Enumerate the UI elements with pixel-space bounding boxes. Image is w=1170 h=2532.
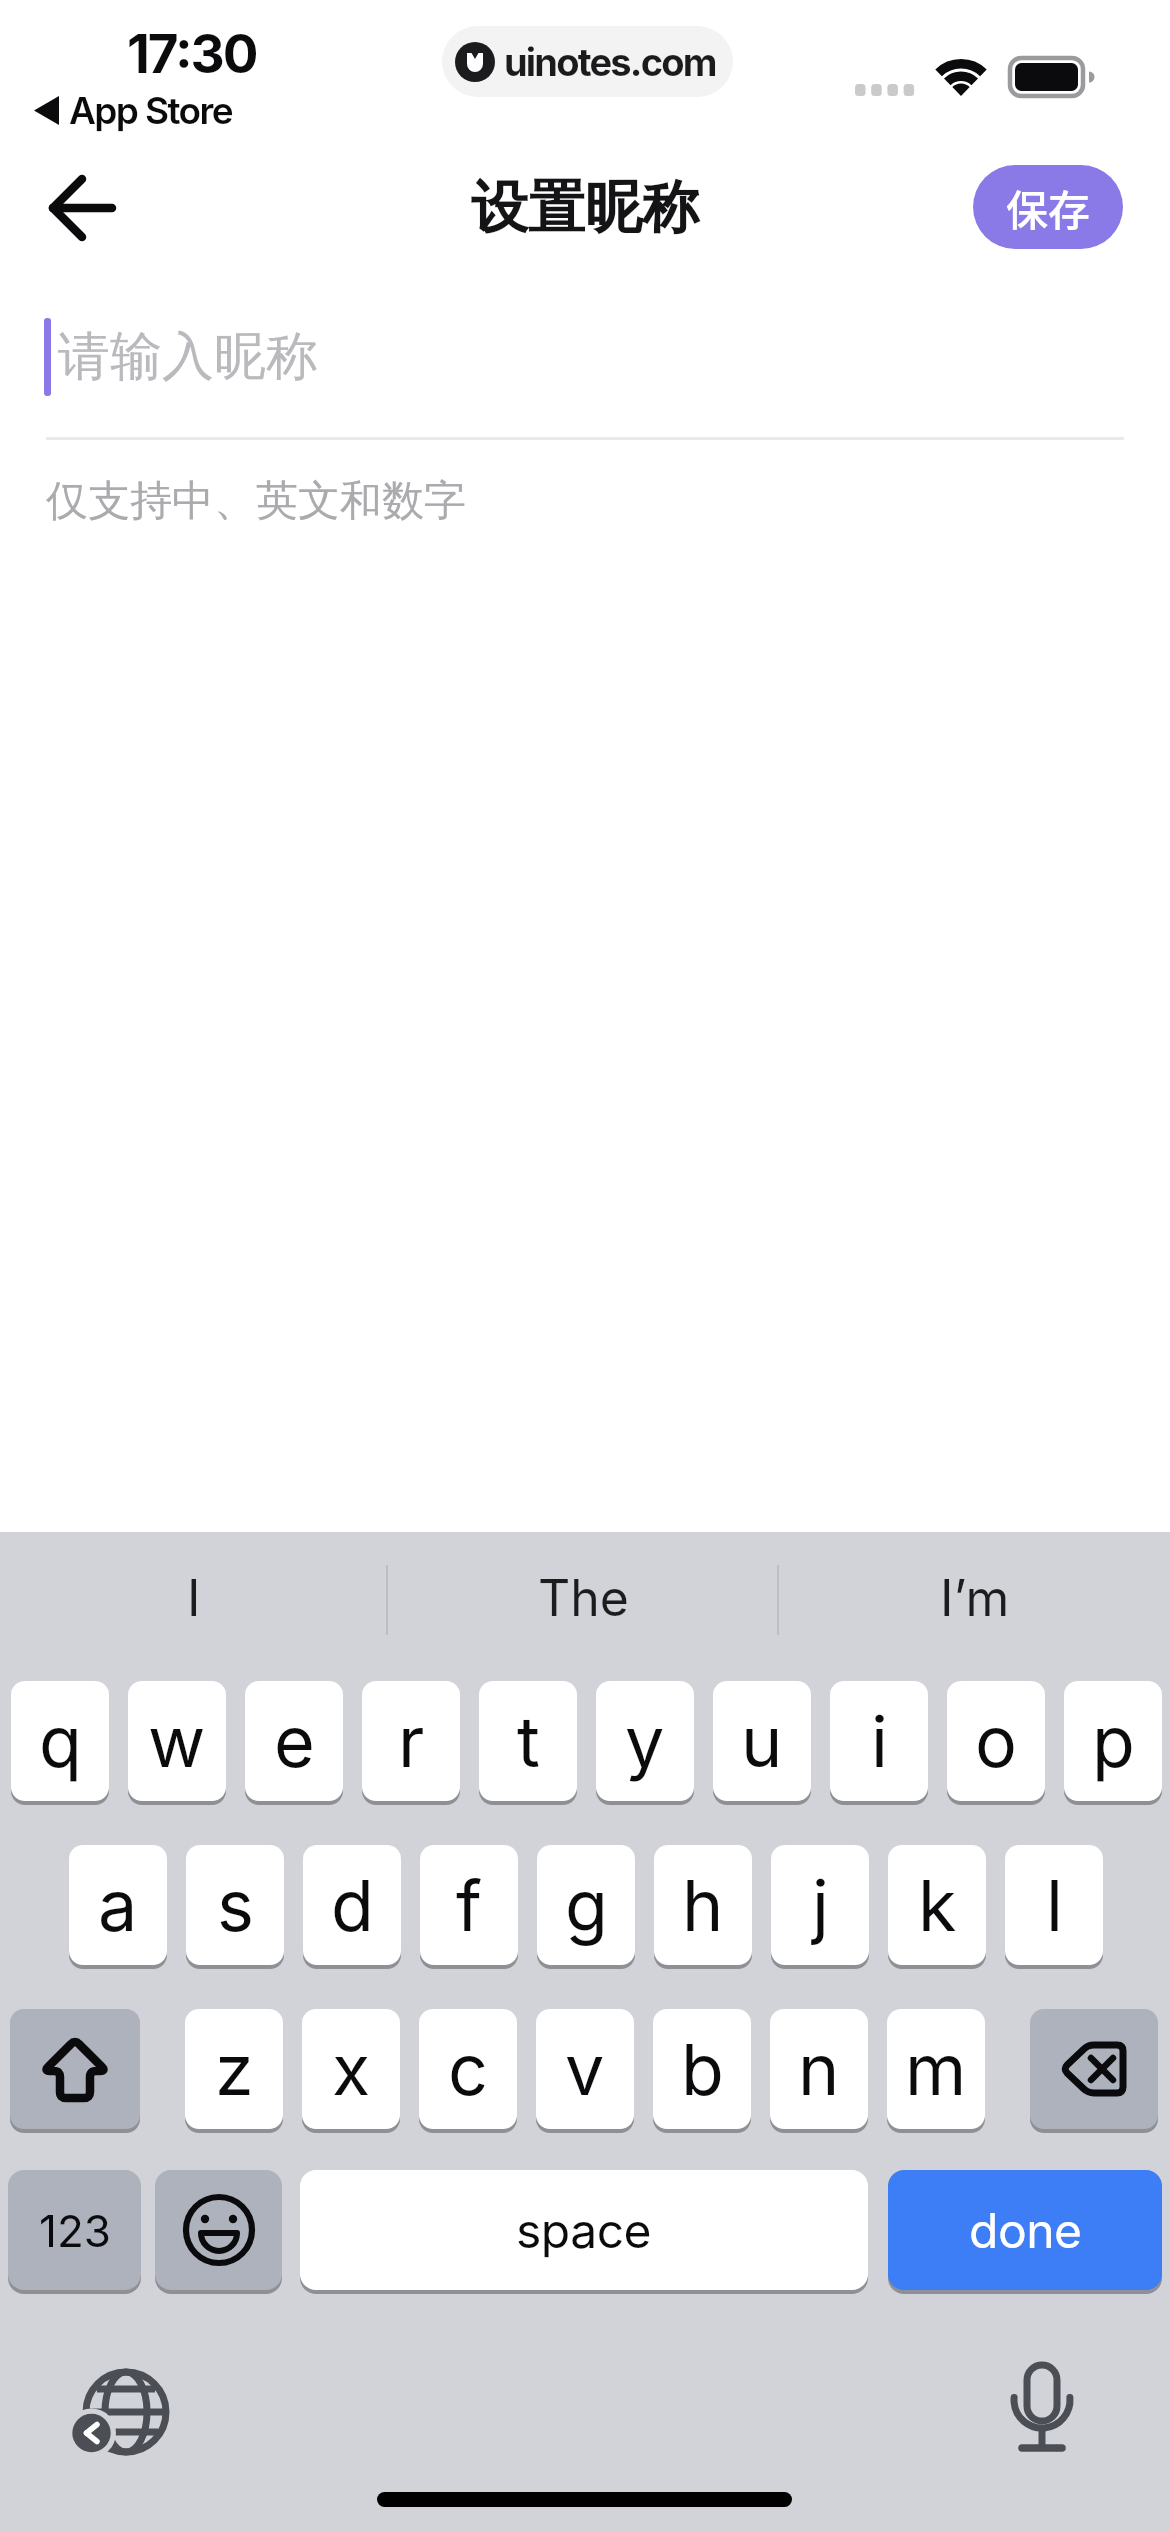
button[interactable]: v (536, 2009, 634, 2129)
button[interactable]: q (11, 1681, 109, 1801)
staticText: q (39, 1699, 82, 1784)
button[interactable]: h (654, 1845, 752, 1965)
button[interactable]: j (771, 1845, 869, 1965)
button[interactable]: I’m (779, 1560, 1170, 1636)
button[interactable]: d (303, 1845, 401, 1965)
staticText: space (516, 2201, 652, 2259)
staticText: The (538, 1568, 629, 1628)
staticText: o (975, 1699, 1017, 1784)
button[interactable]: m (887, 2009, 985, 2129)
button[interactable]: 123 (8, 2170, 141, 2290)
staticText: uinotes.com (504, 39, 716, 85)
button[interactable] (155, 2170, 282, 2290)
staticText: 17:30 (127, 22, 257, 86)
button[interactable]: t (479, 1681, 577, 1801)
button[interactable]: p (1064, 1681, 1162, 1801)
button[interactable]: e (245, 1681, 343, 1801)
staticText: 请输入昵称 (58, 324, 318, 390)
staticText: I’m (940, 1568, 1010, 1628)
staticText: p (1092, 1699, 1135, 1784)
button[interactable]: The (389, 1560, 777, 1636)
staticText: 设置昵称 (471, 172, 699, 244)
button[interactable] (64, 2350, 188, 2474)
button[interactable]: o (947, 1681, 1045, 1801)
button[interactable] (10, 2009, 140, 2129)
button[interactable]: x (302, 2009, 400, 2129)
button[interactable]: f (420, 1845, 518, 1965)
staticText: j (812, 1863, 829, 1948)
staticText: a (98, 1863, 138, 1948)
button[interactable]: App Store (34, 86, 233, 134)
staticText: b (681, 2027, 724, 2112)
staticText: i (871, 1699, 888, 1784)
button[interactable]: z (185, 2009, 283, 2129)
staticText: f (456, 1863, 482, 1948)
staticText: s (217, 1863, 254, 1948)
button[interactable]: g (537, 1845, 635, 1965)
staticText: I (187, 1568, 201, 1628)
staticText: c (448, 2027, 488, 2112)
staticText: g (565, 1863, 608, 1948)
button[interactable]: w (128, 1681, 226, 1801)
button[interactable]: 保存 (973, 165, 1123, 249)
staticText: h (682, 1863, 724, 1948)
staticText: y (625, 1699, 665, 1784)
button[interactable]: y (596, 1681, 694, 1801)
staticText: 仅支持中、英文和数字 (46, 475, 466, 528)
button[interactable]: space (300, 2170, 868, 2290)
staticText: k (918, 1863, 957, 1948)
staticText: w (148, 1699, 206, 1784)
staticText: l (1046, 1863, 1063, 1948)
staticText: d (331, 1863, 374, 1948)
staticText: 123 (39, 2204, 111, 2257)
button[interactable]: i (830, 1681, 928, 1801)
button[interactable] (36, 162, 128, 254)
button[interactable] (1010, 2360, 1074, 2452)
staticText: t (517, 1699, 540, 1784)
button[interactable] (1030, 2009, 1158, 2129)
staticText: n (798, 2027, 840, 2112)
button[interactable]: I (0, 1560, 387, 1636)
staticText: App Store (69, 88, 233, 133)
button[interactable]: done (888, 2170, 1162, 2290)
staticText: e (274, 1699, 315, 1784)
button[interactable]: k (888, 1845, 986, 1965)
button[interactable]: n (770, 2009, 868, 2129)
staticText: r (398, 1699, 425, 1784)
staticText: v (565, 2027, 605, 2112)
button[interactable]: u (713, 1681, 811, 1801)
staticText: x (332, 2027, 371, 2112)
button[interactable]: b (653, 2009, 751, 2129)
button[interactable]: c (419, 2009, 517, 2129)
button[interactable]: uinotes.com (442, 26, 733, 97)
staticText: m (905, 2027, 967, 2112)
button[interactable]: s (186, 1845, 284, 1965)
staticText: 保存 (1006, 177, 1091, 238)
button[interactable]: l (1005, 1845, 1103, 1965)
staticText: z (215, 2027, 254, 2112)
staticText: done (969, 2201, 1082, 2259)
staticText: u (741, 1699, 783, 1784)
button[interactable]: a (69, 1845, 167, 1965)
button[interactable]: r (362, 1681, 460, 1801)
